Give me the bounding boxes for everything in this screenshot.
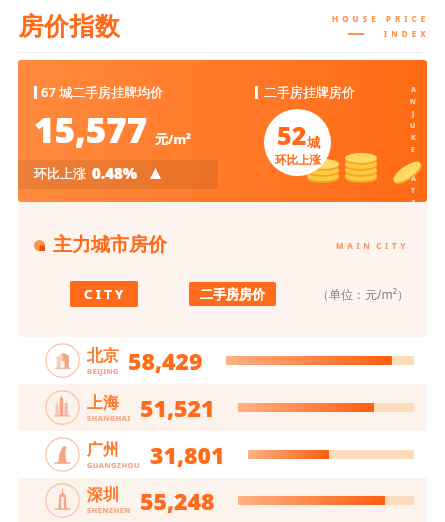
staticText: 广州 [87, 440, 119, 460]
staticText: A [411, 198, 416, 202]
staticText: A [411, 174, 416, 184]
staticText: （单位：元/m²） [317, 286, 409, 302]
staticText: GUANGZHOU [87, 460, 141, 470]
staticText: M A I N C I T Y [336, 240, 407, 251]
staticText: 31,801 [150, 439, 225, 470]
button[interactable]: 北京 [18, 337, 427, 384]
staticText: 58,429 [128, 345, 203, 376]
staticText: 二手房房价 [200, 286, 265, 302]
staticText: 15,577 [34, 106, 148, 154]
button[interactable]: 广州 [18, 431, 427, 478]
staticText: I N D E X [384, 28, 427, 39]
staticText: 主力城市房价 [53, 233, 167, 257]
staticText: E [411, 145, 415, 155]
staticText: BEIJING [87, 366, 119, 376]
staticText: SHANGHAI [87, 413, 131, 423]
staticText: J [412, 109, 415, 119]
staticText: U [410, 121, 416, 131]
other: 广州 [45, 437, 80, 472]
staticText: SHENZHEN [87, 505, 131, 515]
staticText: 城 [307, 134, 320, 150]
staticText: 51,521 [140, 392, 215, 423]
button[interactable]: 深圳 [18, 478, 427, 522]
staticText: N [410, 97, 416, 107]
button[interactable]: C I T Y [70, 281, 138, 307]
staticText: 上海 [87, 393, 119, 413]
button[interactable]: 二手房房价 [189, 282, 276, 306]
staticText: 环比上涨 [275, 153, 321, 167]
staticText: 52 [277, 118, 307, 152]
staticText: 二手房挂牌房价 [264, 84, 355, 100]
other: 深圳 [45, 483, 80, 518]
staticText: H O U S E P R I C E [332, 13, 427, 24]
staticText: 环比上涨 [34, 165, 86, 181]
staticText: 元/m² [155, 130, 191, 148]
staticText: 房价指数 [18, 11, 120, 42]
staticText: K [411, 133, 416, 143]
staticText: 0.48% [92, 163, 137, 183]
button[interactable]: 上海 [18, 384, 427, 431]
staticText: D [410, 162, 416, 172]
other: 上海 [45, 390, 80, 425]
staticText: 67 城二手房挂牌均价 [41, 83, 164, 101]
staticText: A [411, 85, 416, 95]
other: 北京 [45, 343, 80, 378]
staticText: 深圳 [87, 485, 119, 505]
staticText: T [411, 186, 416, 196]
staticText: 北京 [87, 346, 119, 366]
staticText: 55,248 [140, 485, 215, 516]
staticText: C I T Y [84, 285, 124, 303]
